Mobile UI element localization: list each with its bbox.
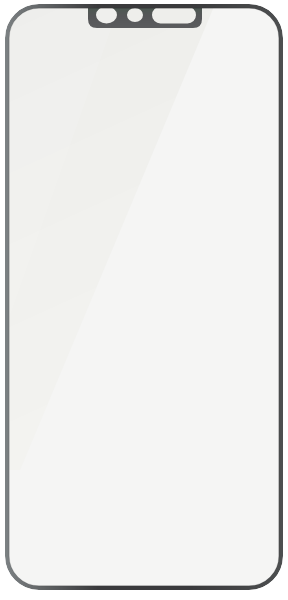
- button[interactable]: Phone screen protector product image: [0, 0, 288, 600]
